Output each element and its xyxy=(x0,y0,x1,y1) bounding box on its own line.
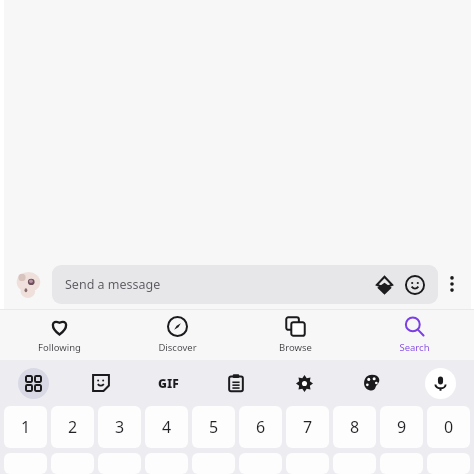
staticText: 1 xyxy=(21,416,31,438)
staticText: Following xyxy=(38,341,81,354)
button[interactable]: Browse xyxy=(236,310,355,360)
button[interactable]: 0 xyxy=(427,406,470,448)
button[interactable]: 2 xyxy=(51,406,94,448)
button[interactable]: Voice input xyxy=(406,360,474,406)
staticText: 2 xyxy=(68,416,78,438)
button[interactable]: Emoji xyxy=(402,272,428,298)
button[interactable]: Following xyxy=(0,310,118,360)
staticText: 3 xyxy=(115,416,125,438)
button[interactable]: Stickers xyxy=(67,360,134,406)
button[interactable]: Profile xyxy=(13,269,44,300)
button[interactable]: Send a message xyxy=(52,265,438,304)
button[interactable]: Effects xyxy=(371,272,397,298)
button[interactable]: 5 xyxy=(192,406,235,448)
staticText: 8 xyxy=(350,416,360,438)
button[interactable]: Themes xyxy=(338,360,406,406)
button[interactable]: 9 xyxy=(380,406,423,448)
button[interactable]: Search xyxy=(355,310,474,360)
staticText: 9 xyxy=(397,416,407,438)
button[interactable]: 6 xyxy=(239,406,282,448)
staticText: 4 xyxy=(162,416,172,438)
button[interactable]: Apps xyxy=(0,360,67,406)
staticText: Browse xyxy=(279,341,312,354)
staticText: Search xyxy=(399,341,430,354)
button[interactable]: GIF xyxy=(134,360,202,406)
staticText: 0 xyxy=(444,416,454,438)
staticText: 6 xyxy=(256,416,266,438)
button[interactable]: 3 xyxy=(98,406,141,448)
button[interactable]: 7 xyxy=(286,406,329,448)
button[interactable]: 8 xyxy=(333,406,376,448)
staticText: 7 xyxy=(303,416,313,438)
button[interactable]: Discover xyxy=(118,310,236,360)
button[interactable]: Clipboard xyxy=(202,360,270,406)
button[interactable]: 1 xyxy=(4,406,47,448)
button[interactable]: Settings xyxy=(270,360,338,406)
staticText: Discover xyxy=(158,341,197,354)
button[interactable]: 4 xyxy=(145,406,188,448)
staticText: 5 xyxy=(209,416,219,438)
staticText: Send a message xyxy=(65,276,161,293)
button[interactable]: More options xyxy=(438,264,466,304)
staticText: GIF xyxy=(158,375,179,391)
